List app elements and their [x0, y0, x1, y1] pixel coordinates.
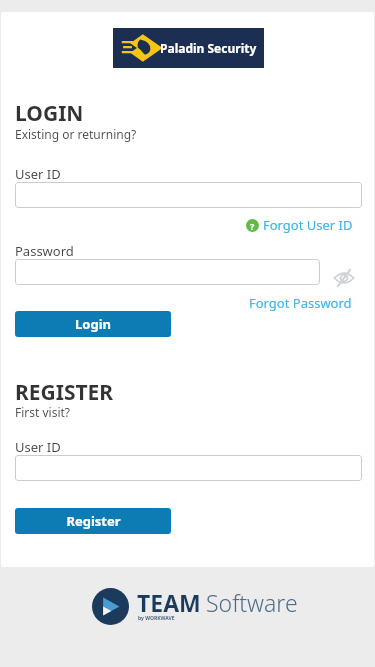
button[interactable]: Text field — [15, 455, 362, 481]
button[interactable]: Login — [15, 311, 171, 337]
staticText: Register — [66, 512, 121, 530]
staticText: Software — [206, 587, 298, 618]
staticText: First visit? — [15, 404, 71, 420]
staticText: Forgot Password — [249, 294, 352, 312]
staticText: by WORKWAVE — [138, 615, 175, 622]
staticText: REGISTER — [15, 378, 114, 407]
staticText: Forgot User ID — [263, 216, 353, 234]
staticText: TEAM — [137, 587, 201, 618]
staticText: Existing or returning? — [15, 126, 137, 142]
button[interactable]: Show password — [333, 270, 355, 286]
button[interactable]: Text field — [15, 259, 320, 285]
staticText: ? — [250, 220, 255, 232]
staticText: Login — [75, 315, 111, 333]
button[interactable]: Text field — [15, 182, 362, 208]
staticText: User ID — [15, 438, 61, 456]
staticText: Paladin Security — [160, 40, 257, 56]
staticText: Password — [15, 242, 74, 260]
staticText: User ID — [15, 165, 61, 183]
button[interactable]: Register — [15, 508, 171, 534]
staticText: LOGIN — [15, 99, 84, 128]
button[interactable]: Forgot Password — [247, 292, 354, 314]
button[interactable]: ? — [244, 214, 355, 236]
